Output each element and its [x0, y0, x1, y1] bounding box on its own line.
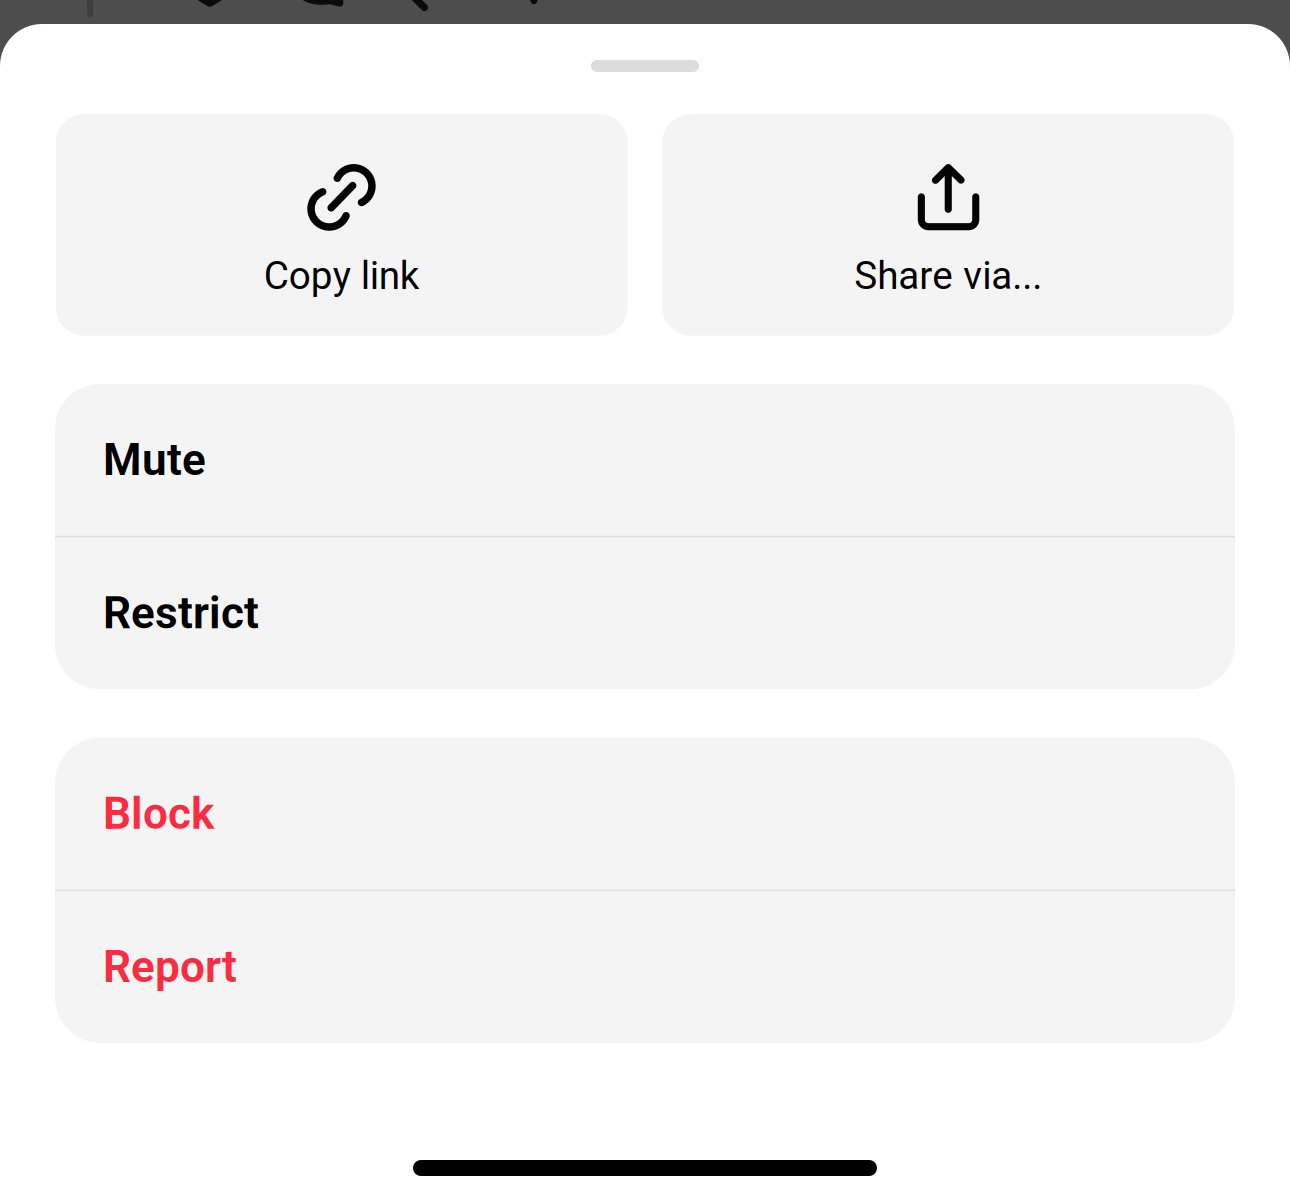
staticText: Copy link — [264, 253, 420, 298]
button[interactable]: Report — [55, 891, 1235, 1043]
button[interactable]: Block — [55, 738, 1235, 889]
staticText: Block — [103, 788, 214, 839]
staticText: Mute — [103, 434, 206, 486]
button[interactable]: Copy link — [56, 114, 627, 336]
button[interactable]: Share via... — [662, 114, 1234, 336]
staticText: Share via... — [854, 253, 1042, 298]
staticText: Restrict — [103, 587, 259, 639]
staticText: Report — [103, 941, 237, 993]
button[interactable]: Mute — [55, 384, 1235, 536]
button[interactable]: Restrict — [55, 537, 1235, 689]
